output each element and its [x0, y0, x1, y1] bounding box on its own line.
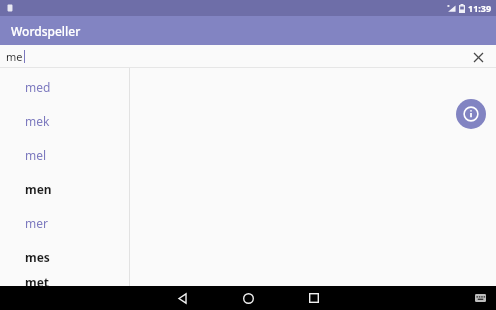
staticText: mer	[25, 215, 48, 231]
staticText: Wordspeller	[11, 23, 81, 39]
staticText: mes	[25, 249, 50, 265]
button[interactable]: men	[0, 172, 129, 206]
button[interactable]: med	[0, 70, 129, 104]
button[interactable]: Clear search	[468, 47, 488, 67]
button[interactable]: Home	[232, 286, 264, 310]
staticText: mek	[25, 113, 50, 129]
button[interactable]: Change keyboard	[470, 288, 490, 308]
button[interactable]: met	[0, 274, 129, 286]
button[interactable]: mek	[0, 104, 129, 138]
button[interactable]: mel	[0, 138, 129, 172]
staticText: me	[6, 49, 23, 64]
button[interactable]: mes	[0, 240, 129, 274]
staticText: 11:39	[468, 2, 492, 14]
staticText: med	[25, 79, 51, 95]
button[interactable]: Recent apps	[298, 286, 330, 310]
button[interactable]: Info	[456, 99, 486, 129]
button[interactable]: Back	[166, 286, 198, 310]
staticText: mel	[25, 147, 47, 163]
staticText: met	[25, 274, 50, 286]
button[interactable]: mer	[0, 206, 129, 240]
staticText: men	[25, 181, 52, 197]
